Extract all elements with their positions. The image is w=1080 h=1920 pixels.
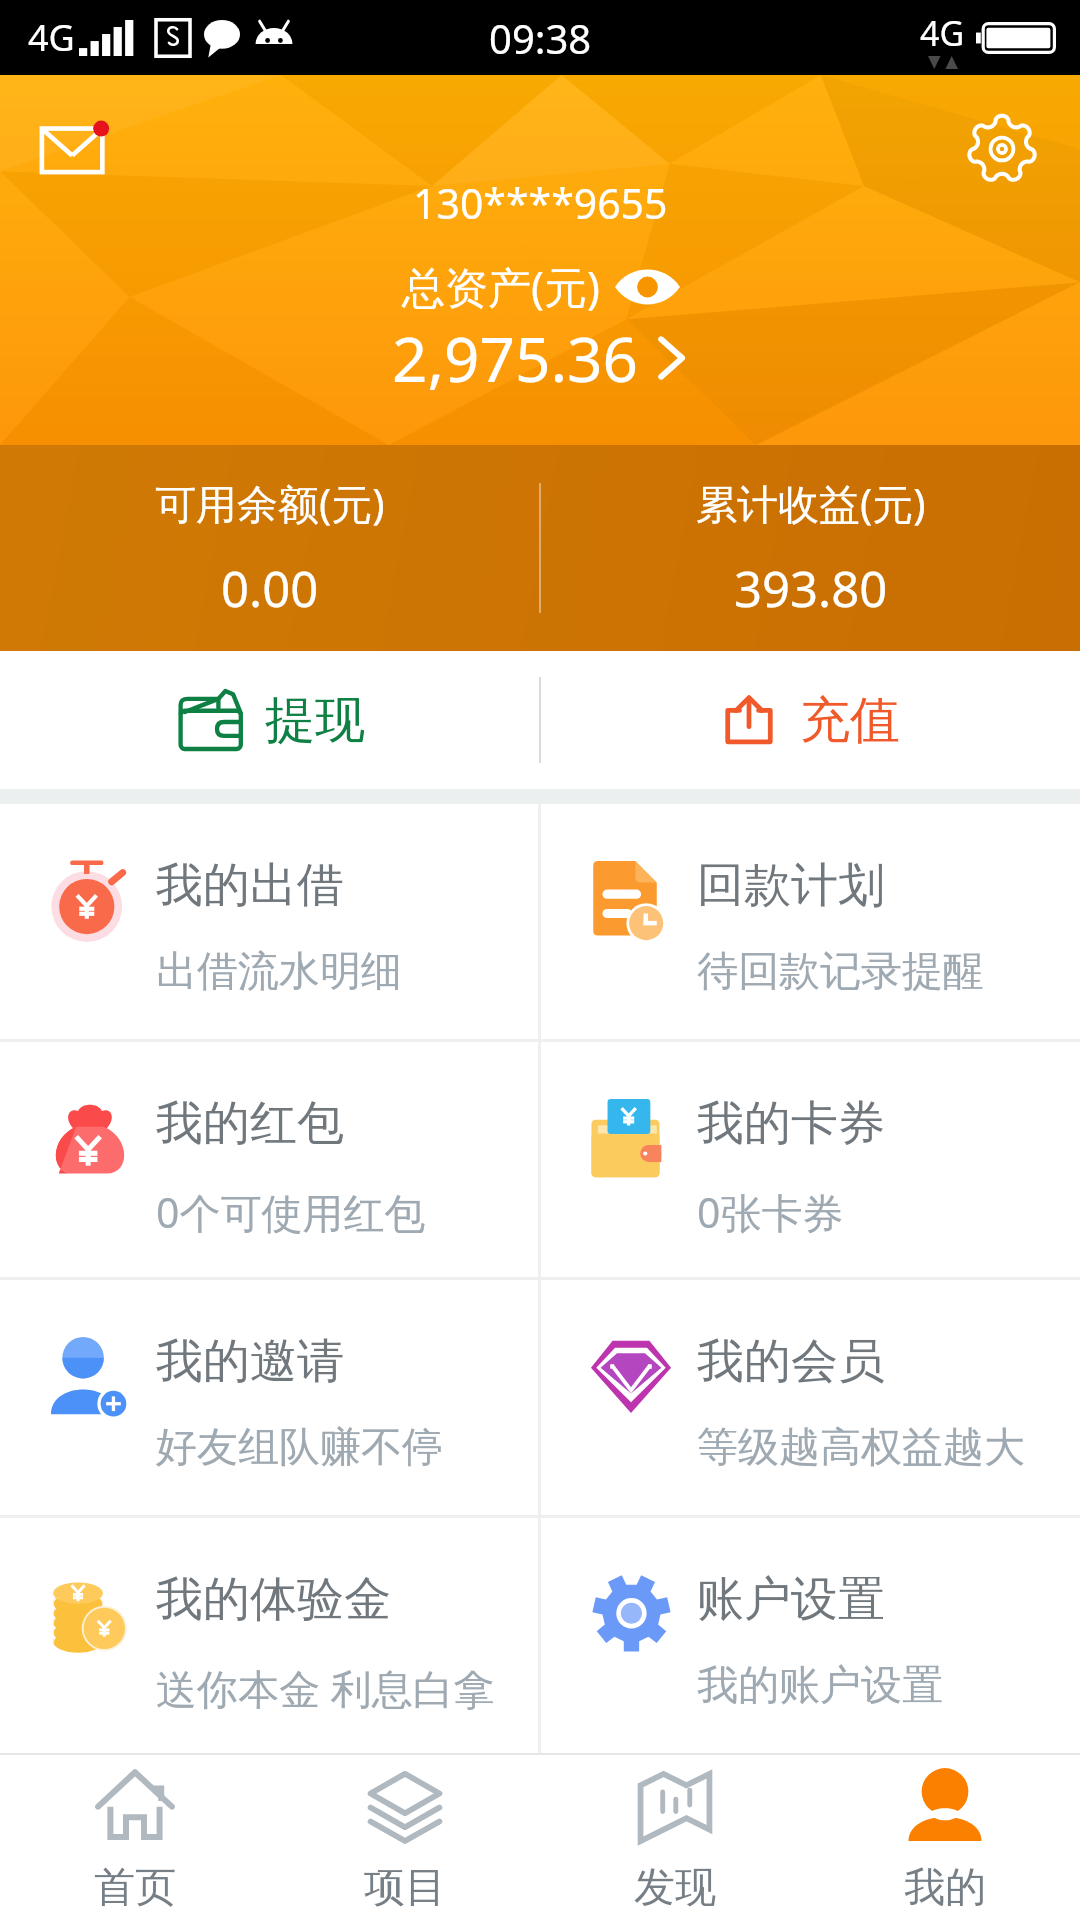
staticText: 我的卡券 (697, 1094, 885, 1153)
button[interactable]: 我的体验金 (0, 1518, 538, 1753)
staticText: 可用余额(元) (155, 475, 385, 531)
staticText: 出借流水明细 (156, 946, 402, 998)
staticText: 4G (920, 10, 965, 56)
staticText: 我的 (904, 1862, 986, 1914)
button[interactable]: 我的会员 (541, 1280, 1080, 1515)
staticText: 项目 (364, 1862, 446, 1914)
staticText: 回款计划 (697, 856, 885, 915)
staticText: 好友组队赚不停 (156, 1422, 443, 1474)
button[interactable]: 我的红包 (0, 1042, 538, 1277)
staticText: 总资产(元) (402, 257, 600, 316)
staticText: 0张卡券 (697, 1184, 844, 1240)
staticText: 0个可使用红包 (156, 1184, 426, 1240)
button[interactable]: 我的出借 (0, 804, 538, 1039)
button[interactable]: 我的卡券 (541, 1042, 1080, 1277)
button[interactable]: 账户设置 (541, 1518, 1080, 1753)
button[interactable]: 累计收益(元) (541, 445, 1080, 651)
staticText: 0.00 (221, 555, 319, 622)
button[interactable]: Messages (22, 93, 134, 205)
button[interactable]: 回款计划 (541, 804, 1080, 1039)
staticText: 09:38 (489, 11, 592, 65)
staticText: 130****9655 (413, 175, 668, 231)
button[interactable]: 发现 (540, 1755, 810, 1920)
staticText: 发现 (634, 1862, 716, 1914)
staticText: 393.80 (734, 555, 888, 622)
button[interactable]: Toggle amount visibility (614, 264, 680, 310)
staticText: 我的邀请 (156, 1332, 344, 1391)
staticText: 我的账户设置 (697, 1660, 943, 1712)
staticText: 等级越高权益越大 (697, 1422, 1025, 1474)
button[interactable]: 提现 (0, 651, 539, 789)
staticText: 账户设置 (697, 1570, 885, 1629)
staticText: 累计收益(元) (696, 475, 926, 531)
staticText: 我的出借 (156, 856, 344, 915)
staticText: 我的红包 (156, 1094, 344, 1153)
staticText: 2,975.36 (392, 316, 639, 400)
button[interactable]: 项目 (270, 1755, 540, 1920)
button[interactable]: 可用余额(元) (0, 445, 539, 651)
staticText: 我的体验金 (156, 1570, 391, 1629)
button[interactable]: Settings (950, 97, 1054, 201)
button[interactable]: 充值 (541, 651, 1080, 789)
staticText: 送你本金 利息白拿 (156, 1660, 495, 1716)
button[interactable]: 首页 (0, 1755, 270, 1920)
button[interactable]: 我的邀请 (0, 1280, 538, 1515)
staticText: 4G (28, 13, 75, 62)
button[interactable]: 我的 (810, 1755, 1080, 1920)
staticText: 充值 (800, 689, 900, 752)
staticText: 首页 (94, 1862, 176, 1914)
staticText: 我的会员 (697, 1332, 885, 1391)
staticText: 待回款记录提醒 (697, 946, 984, 998)
staticText: 提现 (265, 689, 365, 752)
